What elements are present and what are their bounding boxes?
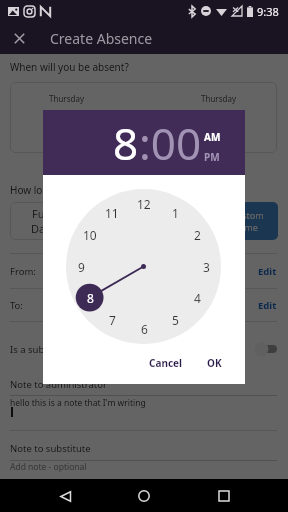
staticText: To: — [10, 299, 23, 312]
staticText: Thursday — [201, 93, 236, 104]
staticText: Cancel — [149, 356, 183, 370]
button[interactable]: Recents — [209, 481, 239, 511]
button[interactable]: 11 — [101, 204, 123, 222]
staticText: 4 — [194, 290, 201, 306]
staticText: Day — [31, 221, 51, 236]
staticText: Custom — [231, 209, 264, 221]
staticText: 11 — [105, 205, 119, 221]
button[interactable]: OK — [200, 352, 229, 374]
staticText: Create Absence — [50, 29, 153, 48]
button[interactable]: 5 — [164, 311, 186, 329]
button[interactable]: Custom — [216, 202, 278, 240]
staticText: 10 — [83, 227, 97, 243]
button[interactable]: 12 — [133, 195, 155, 213]
staticText: Note to substitute — [10, 442, 91, 455]
button[interactable]: Full — [10, 202, 72, 240]
staticText: 3:00 PM — [210, 299, 246, 312]
button[interactable]: Cancel — [142, 352, 190, 374]
staticText: 9:38 — [257, 4, 279, 19]
button[interactable]: Back — [50, 481, 80, 511]
button[interactable]: :00 — [139, 113, 202, 173]
staticText: When will you be absent? — [10, 60, 129, 74]
staticText: hello this is a note that I'm writing — [10, 397, 146, 409]
staticText: 8 — [87, 290, 94, 306]
staticText: From: — [10, 265, 36, 278]
button[interactable]: Thursday — [10, 82, 277, 153]
button[interactable]: 8 — [79, 289, 101, 307]
button[interactable]: 2 — [186, 226, 208, 244]
button[interactable]: 6 — [133, 320, 155, 338]
button[interactable]: PM — [204, 150, 220, 164]
staticText: Oct 24 — [202, 109, 239, 125]
staticText: 8 — [113, 113, 139, 173]
staticText: AM — [204, 130, 221, 144]
button[interactable]: Is a substitute required? — [10, 336, 277, 362]
staticText: 1 — [172, 205, 179, 221]
staticText: Oct 24 — [50, 109, 87, 125]
staticText: PM — [204, 150, 220, 164]
button[interactable]: 8 — [113, 113, 139, 173]
staticText: How long will you be out? — [10, 183, 130, 197]
staticText: Is a substitute required? — [10, 343, 118, 356]
button[interactable]: 1 — [164, 204, 186, 222]
button[interactable]: Close — [4, 23, 35, 54]
button[interactable]: From: — [10, 254, 277, 288]
staticText: Time — [237, 221, 258, 233]
staticText: 6 — [141, 321, 148, 337]
staticText: 7 — [109, 312, 116, 328]
staticText: Thursday — [49, 93, 84, 104]
button[interactable]: 4 — [186, 289, 208, 307]
button[interactable]: 3 — [195, 258, 217, 276]
staticText: Full — [32, 206, 51, 221]
staticText: 3 — [203, 259, 210, 275]
button[interactable]: 7 — [101, 311, 123, 329]
staticText: :00 — [139, 113, 202, 173]
staticText: 2 — [194, 227, 201, 243]
button[interactable]: Half — [113, 202, 175, 240]
button[interactable]: 9 — [70, 258, 92, 276]
staticText: Edit — [258, 265, 277, 278]
staticText: Note to administrator — [10, 378, 107, 391]
button[interactable]: To: — [10, 289, 277, 321]
staticText: 8:00 AM — [209, 265, 246, 278]
staticText: Half — [134, 206, 155, 221]
staticText: 12 — [137, 196, 151, 212]
staticText: OK — [207, 356, 222, 370]
staticText: 9 — [78, 259, 85, 275]
button[interactable]: 10 — [79, 226, 101, 244]
staticText: Edit — [258, 299, 277, 312]
staticText: 5 — [172, 312, 179, 328]
button[interactable]: Home — [129, 481, 159, 511]
staticText: Add note - optional — [10, 461, 87, 473]
button[interactable]: AM — [204, 130, 221, 144]
